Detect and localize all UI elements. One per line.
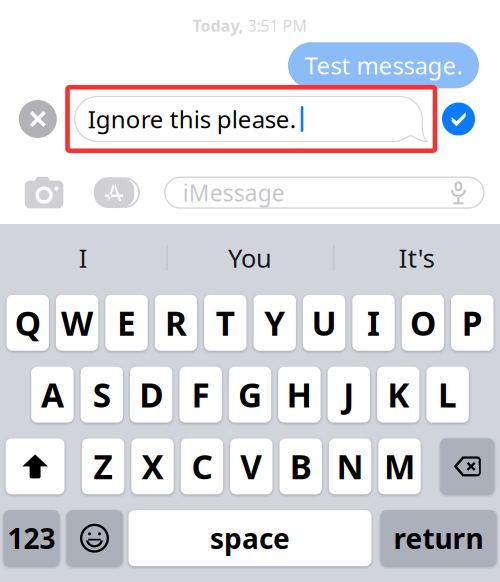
staticText: M (384, 444, 415, 489)
button[interactable]: P (451, 295, 493, 351)
button[interactable]: I (0, 224, 167, 292)
button[interactable]: return (380, 510, 496, 566)
staticText: J (343, 372, 354, 417)
button[interactable]: Cancel edit (19, 100, 57, 138)
button[interactable]: T (204, 295, 246, 351)
staticText: C (191, 444, 212, 489)
staticText: O (410, 301, 436, 345)
staticText: G (238, 372, 262, 417)
staticText: E (117, 301, 136, 345)
staticText: I (367, 301, 380, 345)
button[interactable]: A (31, 367, 74, 423)
staticText: A (41, 372, 64, 417)
button[interactable]: O (402, 295, 444, 351)
staticText: space (210, 520, 290, 557)
button[interactable]: S (81, 367, 123, 423)
button[interactable]: B (279, 438, 322, 494)
staticText: I (79, 241, 88, 275)
staticText: U (312, 301, 337, 345)
button[interactable]: You (167, 224, 333, 292)
button[interactable]: Apps (94, 177, 140, 208)
staticText: 123 (7, 520, 55, 557)
button[interactable]: X (131, 438, 174, 494)
staticText: It's (399, 241, 435, 275)
button[interactable]: It's (333, 224, 500, 292)
button[interactable]: Emoji (66, 510, 122, 566)
staticText: X (141, 444, 163, 489)
staticText: Q (15, 301, 41, 345)
staticText: N (337, 444, 364, 489)
staticText: F (192, 372, 210, 417)
button[interactable]: Q (6, 295, 49, 351)
button[interactable]: space (128, 510, 371, 566)
staticText: B (290, 444, 312, 489)
staticText: L (438, 372, 457, 417)
button[interactable]: Shift (6, 438, 64, 494)
staticText: W (61, 301, 93, 345)
button[interactable]: R (155, 295, 197, 351)
button[interactable]: M (378, 438, 421, 494)
button[interactable]: F (179, 367, 222, 423)
staticText: Today, 3:51 PM (192, 15, 307, 36)
button[interactable]: 123 (3, 510, 59, 566)
button[interactable]: Z (82, 438, 124, 494)
button[interactable]: K (377, 367, 419, 423)
staticText: iMessage (183, 178, 285, 208)
button[interactable]: W (56, 295, 98, 351)
button[interactable]: Camera (25, 177, 63, 208)
button[interactable]: Confirm edit (442, 102, 475, 135)
staticText: Test message. (304, 49, 462, 81)
staticText: Y (264, 301, 285, 345)
staticText: D (139, 372, 163, 417)
staticText: Ignore this please. (88, 103, 296, 135)
button[interactable]: Dictate (450, 181, 467, 204)
staticText: H (286, 372, 312, 417)
button[interactable]: J (328, 367, 370, 423)
button[interactable]: N (329, 438, 371, 494)
staticText: K (387, 372, 409, 417)
button[interactable]: Y (253, 295, 296, 351)
staticText: Z (94, 444, 113, 489)
staticText: S (93, 372, 111, 417)
staticText: R (165, 301, 187, 345)
button[interactable]: Delete (440, 438, 494, 494)
staticText: You (228, 241, 272, 275)
button[interactable]: G (229, 367, 271, 423)
button[interactable]: U (303, 295, 345, 351)
button[interactable]: V (230, 438, 272, 494)
button[interactable]: D (130, 367, 172, 423)
button[interactable]: I (352, 295, 395, 351)
staticText: V (240, 444, 262, 489)
button[interactable]: L (426, 367, 469, 423)
button[interactable]: E (105, 295, 148, 351)
staticText: return (393, 520, 483, 557)
staticText: T (216, 301, 235, 345)
button[interactable]: H (278, 367, 321, 423)
button[interactable]: C (181, 438, 223, 494)
staticText: P (462, 301, 483, 345)
